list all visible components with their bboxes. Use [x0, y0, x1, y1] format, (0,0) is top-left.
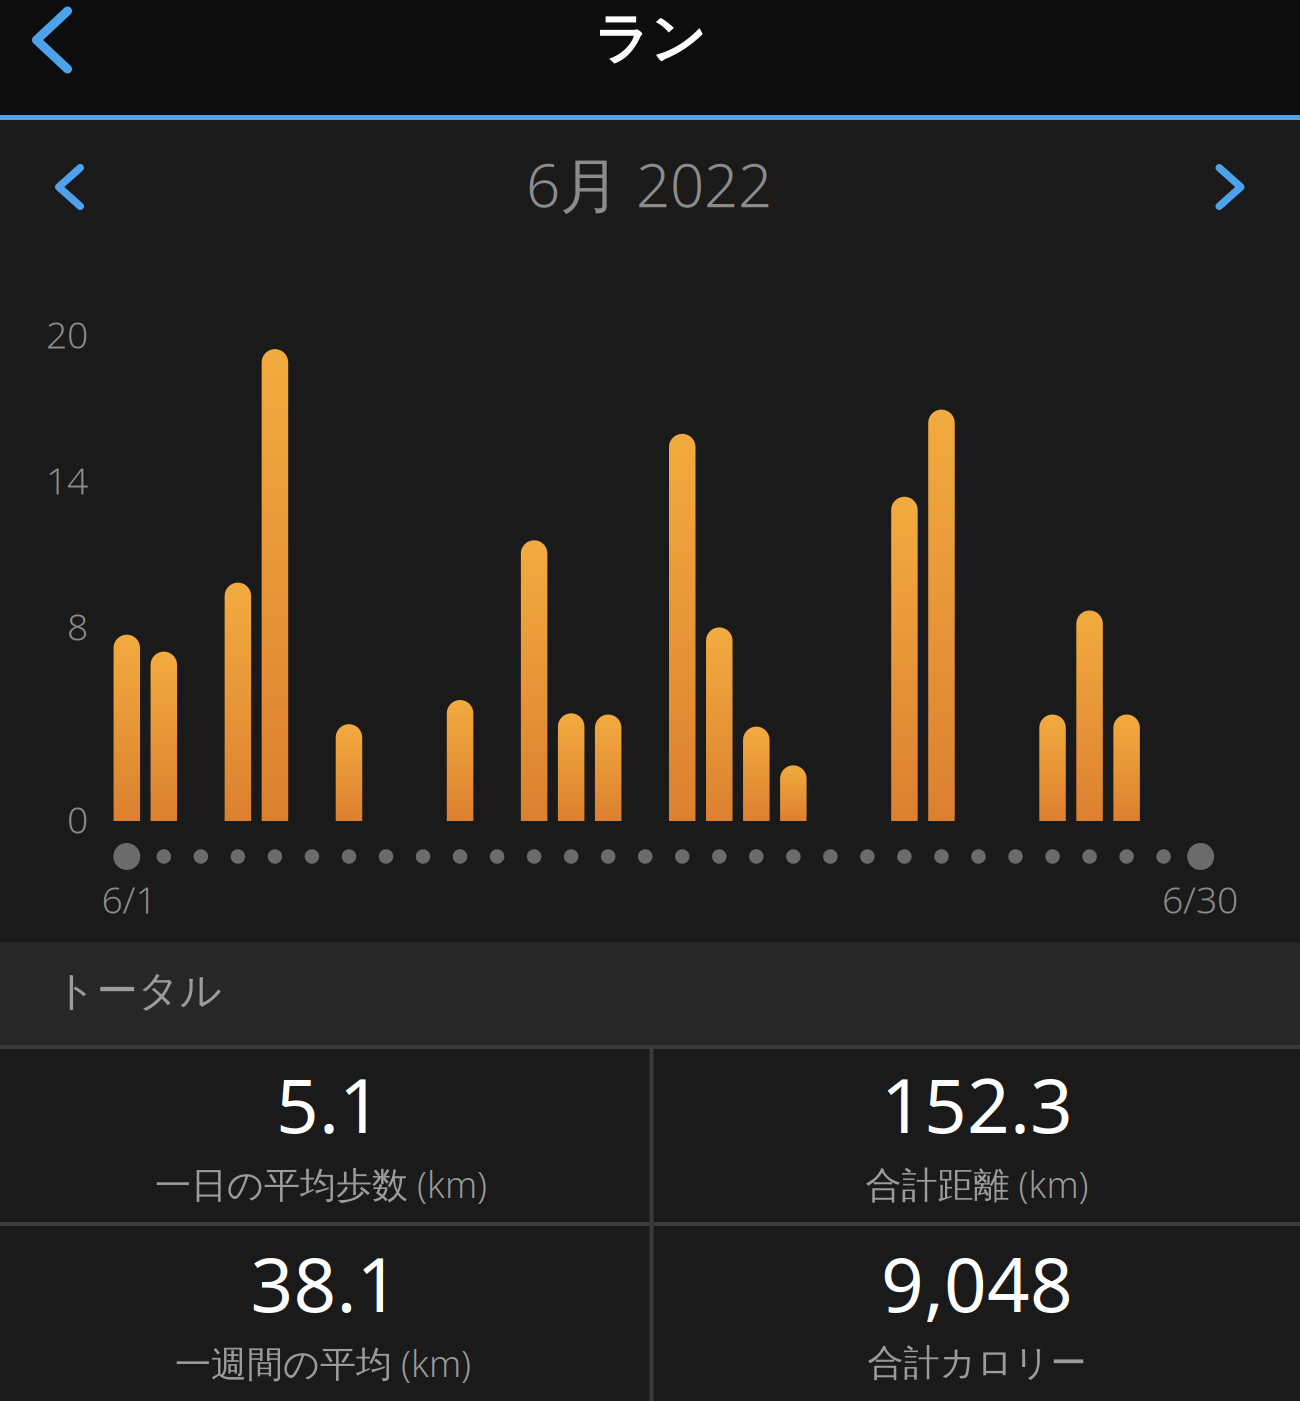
button[interactable]: Back [0, 0, 107, 97]
staticText: 合計距離 (km) [865, 1160, 1088, 1208]
staticText: 38.1 [250, 1233, 399, 1333]
staticText: 20 [46, 309, 88, 359]
staticText: 152.3 [881, 1054, 1073, 1154]
staticText: 6/1 [101, 874, 156, 924]
staticText: トータル [54, 966, 221, 1016]
staticText: 8 [67, 601, 88, 651]
staticText: 5.1 [276, 1054, 382, 1154]
staticText: 9,048 [881, 1233, 1073, 1333]
staticText: 一週間の平均 (km) [175, 1339, 471, 1387]
staticText: 6月 2022 [526, 144, 772, 224]
staticText: 0 [67, 794, 88, 844]
staticText: 一日の平均歩数 (km) [155, 1160, 487, 1208]
button[interactable]: Next month [1170, 131, 1290, 243]
staticText: 6/30 [1162, 874, 1238, 924]
staticText: ラン [594, 5, 706, 72]
staticText: 合計カロリー [867, 1341, 1086, 1385]
button[interactable]: Previous month [9, 131, 129, 243]
staticText: 14 [46, 455, 88, 505]
